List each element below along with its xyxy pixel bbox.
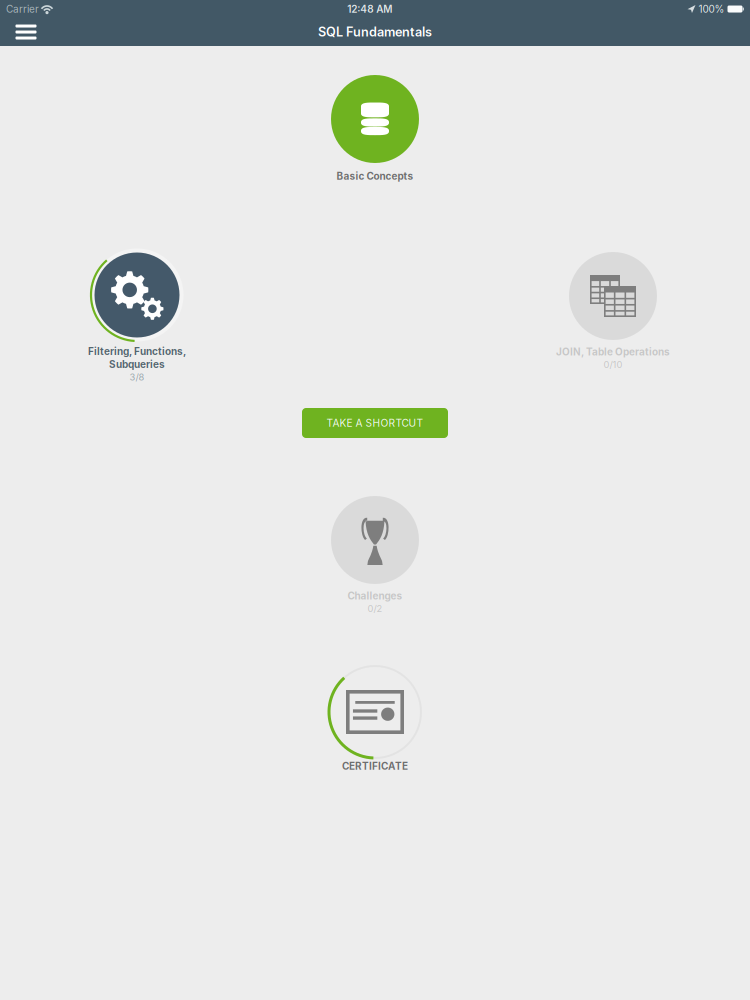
button[interactable]: [569, 252, 657, 340]
staticText: 100%: [698, 3, 724, 15]
button[interactable]: TAKE A SHORTCUT: [302, 408, 448, 438]
button[interactable]: [325, 662, 425, 762]
staticText: TAKE A SHORTCUT: [326, 417, 423, 429]
staticText: SQL Fundamentals: [318, 24, 432, 40]
button[interactable]: [331, 496, 419, 584]
staticText: Filtering, Functions,: [88, 345, 186, 357]
staticText: JOIN, Table Operations: [556, 346, 670, 358]
staticText: Basic Concepts: [336, 170, 413, 182]
staticText: CERTIFICATE: [342, 760, 408, 772]
button[interactable]: [331, 75, 419, 163]
staticText: 0/10: [603, 359, 622, 370]
button[interactable]: [87, 245, 187, 345]
staticText: Challenges: [347, 590, 402, 602]
staticText: 0/2: [367, 603, 382, 614]
button[interactable]: Menu: [5, 18, 47, 46]
staticText: Carrier: [6, 3, 39, 15]
staticText: 3/8: [129, 371, 144, 383]
staticText: 12:48 AM: [347, 3, 392, 15]
staticText: Subqueries: [109, 358, 165, 370]
